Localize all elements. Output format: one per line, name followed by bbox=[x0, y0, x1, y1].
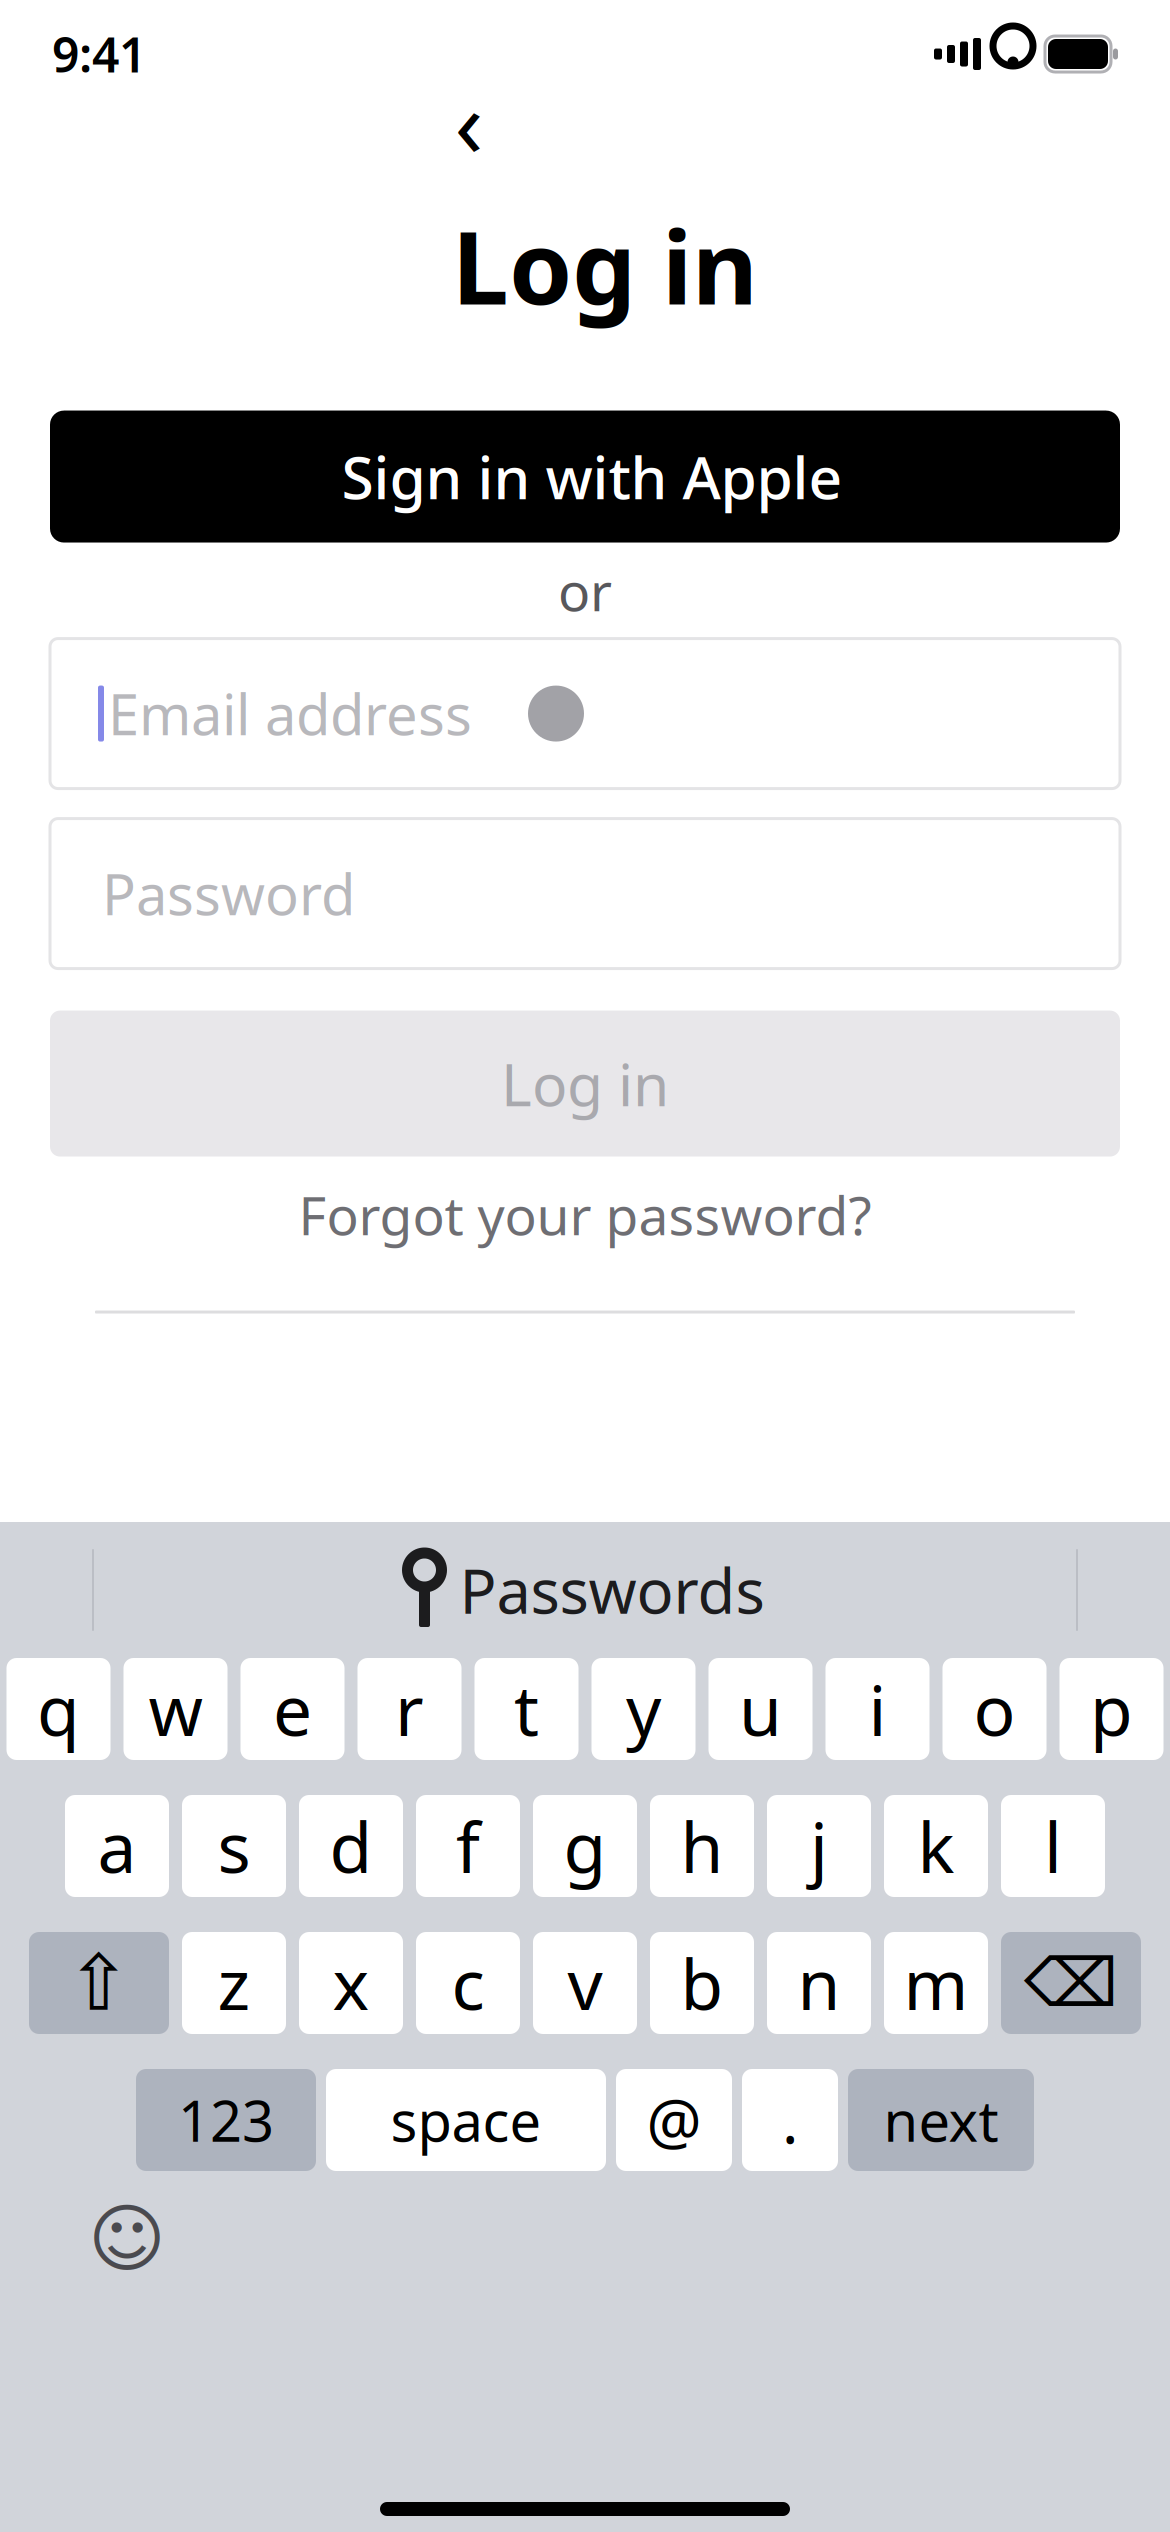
button[interactable]: n bbox=[767, 1932, 871, 2034]
button[interactable]: @ bbox=[616, 2069, 732, 2171]
staticText: Sign in with Apple bbox=[341, 438, 842, 515]
button[interactable]: e bbox=[240, 1658, 344, 1760]
button[interactable]: b bbox=[650, 1932, 754, 2034]
staticText: Email address bbox=[108, 676, 472, 751]
button[interactable]: space bbox=[326, 2069, 606, 2171]
staticText: Log in bbox=[501, 1045, 669, 1122]
button[interactable]: Password bbox=[50, 819, 1120, 969]
button[interactable]: x bbox=[299, 1932, 403, 2034]
button[interactable]: l bbox=[1001, 1795, 1105, 1897]
staticText: h bbox=[680, 1800, 723, 1892]
staticText: next bbox=[883, 2083, 998, 2157]
button[interactable]: p bbox=[1059, 1658, 1163, 1760]
button[interactable]: Log in bbox=[50, 1011, 1120, 1157]
staticText: x bbox=[332, 1937, 369, 2029]
button[interactable]: z bbox=[182, 1932, 286, 2034]
button[interactable]: t bbox=[474, 1658, 578, 1760]
button[interactable]: 123 bbox=[136, 2069, 316, 2171]
staticText: m bbox=[903, 1937, 968, 2029]
button[interactable]: Forgot your password? bbox=[0, 1185, 1170, 1245]
button[interactable]: Back bbox=[432, 84, 506, 158]
button[interactable]: u bbox=[708, 1658, 812, 1760]
button[interactable]: d bbox=[299, 1795, 403, 1897]
staticText: i bbox=[868, 1663, 886, 1755]
staticText: v bbox=[567, 1937, 602, 2029]
staticText: 9:41 bbox=[52, 22, 146, 86]
button[interactable]: a bbox=[65, 1795, 169, 1897]
staticText: j bbox=[810, 1800, 828, 1892]
button[interactable]: r bbox=[357, 1658, 461, 1760]
staticText: u bbox=[739, 1663, 782, 1755]
button[interactable]: . bbox=[742, 2069, 838, 2171]
button[interactable]: g bbox=[533, 1795, 637, 1897]
button[interactable]: s bbox=[182, 1795, 286, 1897]
button[interactable]: Passwords bbox=[375, 1545, 794, 1635]
staticText: q bbox=[37, 1663, 80, 1755]
staticText: Passwords bbox=[459, 1549, 764, 1631]
staticText: n bbox=[797, 1937, 840, 2029]
staticText: f bbox=[456, 1800, 480, 1892]
staticText: c bbox=[451, 1937, 484, 2029]
button[interactable] bbox=[50, 411, 1120, 543]
staticText: e bbox=[273, 1663, 312, 1755]
staticText: p bbox=[1090, 1663, 1133, 1755]
staticText: ⌫ bbox=[1024, 1945, 1118, 2021]
button[interactable]: y bbox=[591, 1658, 695, 1760]
button[interactable]: h bbox=[650, 1795, 754, 1897]
staticText: a bbox=[97, 1800, 136, 1892]
staticText: ‹ bbox=[454, 59, 483, 183]
button[interactable]: c bbox=[416, 1932, 520, 2034]
staticText: Password bbox=[102, 856, 355, 931]
staticText: d bbox=[329, 1800, 372, 1892]
staticText: k bbox=[917, 1800, 954, 1892]
staticText: Log in bbox=[452, 198, 758, 333]
staticText: s bbox=[217, 1800, 250, 1892]
button[interactable]: q bbox=[6, 1658, 110, 1760]
button[interactable]: o bbox=[942, 1658, 1046, 1760]
staticText: or bbox=[558, 555, 612, 626]
staticText: . bbox=[782, 2079, 798, 2161]
button[interactable]: i bbox=[825, 1658, 929, 1760]
button[interactable]: Email address bbox=[50, 639, 1120, 789]
staticText: space bbox=[390, 2083, 541, 2157]
staticText: b bbox=[680, 1937, 723, 2029]
staticText: t bbox=[514, 1663, 539, 1755]
button[interactable]: f bbox=[416, 1795, 520, 1897]
button[interactable]: Emoji bbox=[84, 2196, 170, 2282]
staticText: w bbox=[148, 1663, 202, 1755]
button[interactable]: k bbox=[884, 1795, 988, 1897]
staticText: ☺ bbox=[88, 2197, 166, 2281]
staticText: ⇧ bbox=[66, 1939, 131, 2027]
staticText: y bbox=[626, 1663, 661, 1755]
staticText: o bbox=[973, 1663, 1015, 1755]
staticText: @ bbox=[646, 2079, 701, 2161]
staticText: g bbox=[563, 1800, 606, 1892]
button[interactable]: next bbox=[848, 2069, 1034, 2171]
button[interactable]: m bbox=[884, 1932, 988, 2034]
button[interactable]: w bbox=[123, 1658, 227, 1760]
staticText: z bbox=[217, 1937, 250, 2029]
button[interactable]: Shift bbox=[29, 1932, 169, 2034]
button[interactable]: Delete bbox=[1001, 1932, 1141, 2034]
staticText: l bbox=[1044, 1800, 1062, 1892]
staticText: Forgot your password? bbox=[298, 1179, 871, 1250]
staticText: 123 bbox=[178, 2083, 274, 2157]
button[interactable]: j bbox=[767, 1795, 871, 1897]
staticText: r bbox=[395, 1663, 424, 1755]
button[interactable]: v bbox=[533, 1932, 637, 2034]
